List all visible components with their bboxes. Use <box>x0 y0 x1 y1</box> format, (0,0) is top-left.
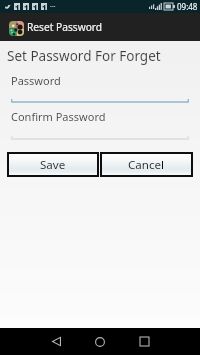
staticText: Reset Password <box>27 20 103 34</box>
staticText: Set Password For Forget <box>7 47 161 65</box>
staticText: 09:48 <box>177 1 198 12</box>
button[interactable]: Home <box>85 328 115 355</box>
button[interactable]: Back <box>41 328 71 355</box>
button[interactable]: Save <box>7 152 99 177</box>
button[interactable]: Confirm Password <box>11 106 189 140</box>
button[interactable]: Cancel <box>100 152 193 177</box>
staticText: Password <box>11 73 61 88</box>
staticText: ... <box>50 0 56 10</box>
staticText: Confirm Password <box>11 109 106 124</box>
staticText: Save <box>40 157 66 173</box>
button[interactable]: Recent apps <box>129 328 159 355</box>
staticText: Cancel <box>128 157 165 173</box>
button[interactable]: App icon <box>9 21 24 36</box>
button[interactable]: Password <box>11 70 189 103</box>
